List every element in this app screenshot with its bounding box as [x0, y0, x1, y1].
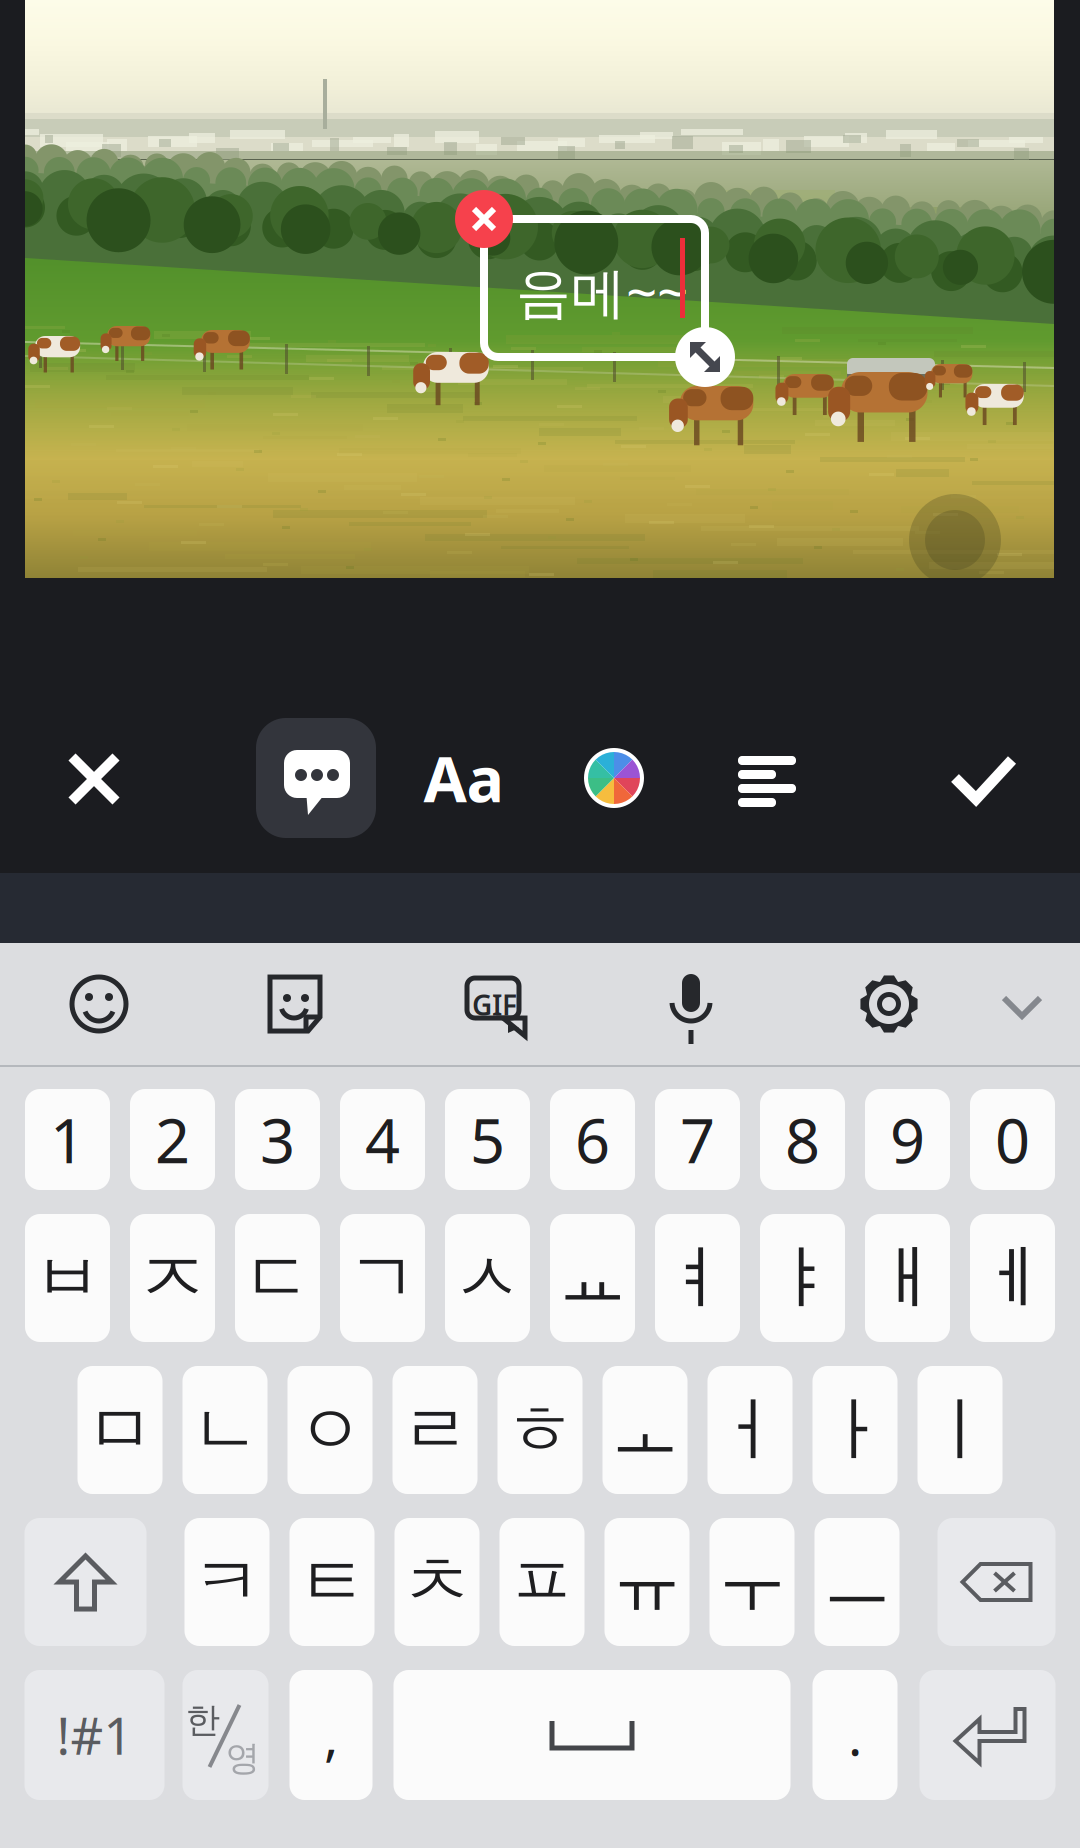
- button[interactable]: Settings: [829, 944, 949, 1064]
- button[interactable]: ㅎ: [497, 1366, 582, 1494]
- button[interactable]: 3: [235, 1089, 320, 1190]
- button[interactable]: Emoji: [39, 944, 159, 1064]
- button[interactable]: Close: [16, 698, 176, 858]
- staticText: 6: [575, 1099, 610, 1180]
- staticText: ㅋ: [192, 1539, 261, 1625]
- staticText: ,: [324, 1700, 338, 1770]
- button[interactable]: ㅠ: [604, 1518, 689, 1646]
- button[interactable]: Shift: [24, 1518, 146, 1646]
- button[interactable]: 2: [130, 1089, 215, 1190]
- staticText: 4: [365, 1099, 400, 1180]
- staticText: ㅁ: [85, 1387, 154, 1473]
- staticText: ㅑ: [768, 1235, 837, 1321]
- button[interactable]: ㅂ: [25, 1214, 110, 1342]
- button[interactable]: .: [812, 1670, 897, 1800]
- button[interactable]: 6: [550, 1089, 635, 1190]
- staticText: ㅇ: [295, 1387, 364, 1473]
- button[interactable]: ㅈ: [130, 1214, 215, 1342]
- button[interactable]: ㄷ: [235, 1214, 320, 1342]
- button[interactable]: ㅔ: [970, 1214, 1055, 1342]
- staticText: ㅅ: [453, 1235, 522, 1321]
- staticText: ㅊ: [402, 1539, 471, 1625]
- staticText: 음메~~: [516, 255, 688, 328]
- staticText: ㅎ: [505, 1387, 574, 1473]
- button[interactable]: ㅇ: [287, 1366, 372, 1494]
- staticText: ㅣ: [925, 1387, 994, 1473]
- staticText: 9: [890, 1099, 925, 1180]
- button[interactable]: ㅣ: [917, 1366, 1002, 1494]
- button[interactable]: 0: [970, 1089, 1055, 1190]
- button[interactable]: Space: [393, 1670, 790, 1800]
- button[interactable]: ㅑ: [760, 1214, 845, 1342]
- button[interactable]: ㅐ: [865, 1214, 950, 1342]
- staticText: ㄷ: [243, 1235, 312, 1321]
- button[interactable]: 8: [760, 1089, 845, 1190]
- button[interactable]: ㅁ: [77, 1366, 162, 1494]
- button[interactable]: Colour: [534, 698, 694, 858]
- button[interactable]: 4: [340, 1089, 425, 1190]
- staticText: .: [848, 1700, 862, 1770]
- staticText: ㄱ: [348, 1235, 417, 1321]
- staticText: !#1: [56, 1701, 132, 1769]
- button[interactable]: Font: [384, 698, 544, 858]
- button[interactable]: 9: [865, 1089, 950, 1190]
- button[interactable]: Alignment: [687, 698, 847, 858]
- button[interactable]: GIF: [434, 944, 554, 1064]
- staticText: ㅔ: [978, 1235, 1047, 1321]
- staticText: ㅌ: [297, 1539, 366, 1625]
- button[interactable]: ㅓ: [707, 1366, 792, 1494]
- button[interactable]: ㅊ: [394, 1518, 479, 1646]
- button[interactable]: ㅍ: [499, 1518, 584, 1646]
- staticText: 5: [470, 1099, 505, 1180]
- staticText: ㅗ: [610, 1387, 679, 1473]
- button[interactable]: ㅅ: [445, 1214, 530, 1342]
- button[interactable]: ㅡ: [814, 1518, 899, 1646]
- staticText: ㅍ: [507, 1539, 576, 1625]
- button[interactable]: ㄱ: [340, 1214, 425, 1342]
- button[interactable]: !#1: [24, 1670, 164, 1800]
- button[interactable]: Return: [919, 1670, 1055, 1800]
- button[interactable]: Hide keyboard: [962, 944, 1080, 1064]
- button[interactable]: 7: [655, 1089, 740, 1190]
- button[interactable]: ㅌ: [289, 1518, 374, 1646]
- button[interactable]: Done: [902, 698, 1062, 858]
- button[interactable]: Backspace: [937, 1518, 1055, 1646]
- button[interactable]: Korean English toggle: [182, 1670, 268, 1800]
- staticText: 3: [260, 1099, 295, 1180]
- button[interactable]: ㅜ: [709, 1518, 794, 1646]
- staticText: 영: [225, 1737, 260, 1780]
- staticText: ㅛ: [558, 1235, 627, 1321]
- staticText: ㄴ: [190, 1387, 259, 1473]
- staticText: ㅡ: [822, 1539, 891, 1625]
- staticText: ㅏ: [820, 1387, 889, 1473]
- button[interactable]: ㅕ: [655, 1214, 740, 1342]
- staticText: ㅜ: [717, 1539, 786, 1625]
- staticText: 8: [785, 1099, 820, 1180]
- button[interactable]: ㅏ: [812, 1366, 897, 1494]
- staticText: GIF: [472, 986, 517, 1023]
- button[interactable]: ㅗ: [602, 1366, 687, 1494]
- staticText: 0: [995, 1099, 1030, 1180]
- button[interactable]: ㅛ: [550, 1214, 635, 1342]
- staticText: ㅓ: [715, 1387, 784, 1473]
- button[interactable]: 1: [25, 1089, 110, 1190]
- button[interactable]: Stickers: [235, 944, 355, 1064]
- staticText: ㅕ: [663, 1235, 732, 1321]
- button[interactable]: ,: [289, 1670, 372, 1800]
- button[interactable]: ㄹ: [392, 1366, 477, 1494]
- staticText: ㅠ: [612, 1539, 681, 1625]
- staticText: 7: [680, 1099, 715, 1180]
- button[interactable]: ㅋ: [184, 1518, 269, 1646]
- staticText: 2: [155, 1099, 190, 1180]
- button[interactable]: 5: [445, 1089, 530, 1190]
- staticText: Aa: [423, 736, 504, 820]
- staticText: ㄹ: [400, 1387, 469, 1473]
- button[interactable]: ㄴ: [182, 1366, 267, 1494]
- staticText: ㅈ: [138, 1235, 207, 1321]
- staticText: ㅂ: [33, 1235, 102, 1321]
- button[interactable]: Voice input: [631, 944, 751, 1064]
- staticText: ㅐ: [873, 1235, 942, 1321]
- staticText: 한: [185, 1699, 220, 1742]
- button[interactable]: Bubble style: [236, 698, 396, 858]
- staticText: 1: [50, 1099, 85, 1180]
